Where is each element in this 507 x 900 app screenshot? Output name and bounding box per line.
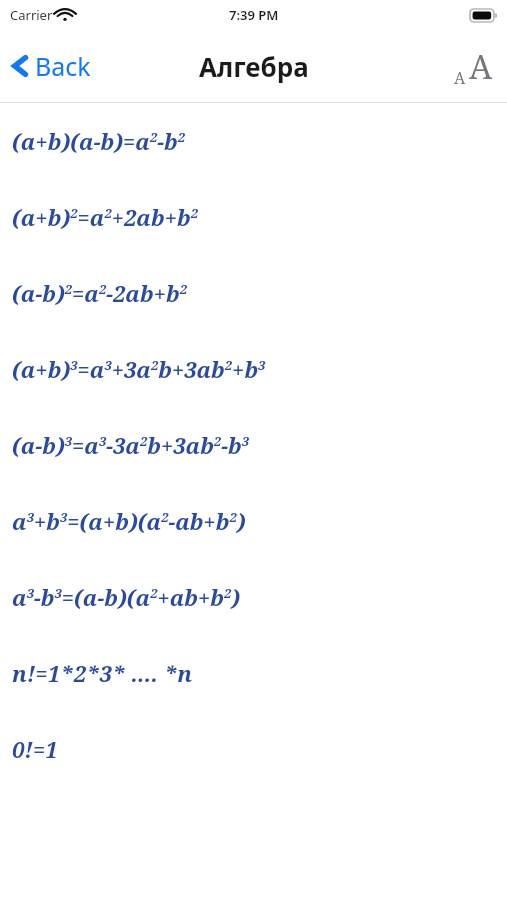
staticText: a3+b3=(a+b)(a2-ab+b2): [12, 506, 246, 536]
staticText: 0!=1: [12, 734, 58, 764]
button[interactable]: Change text size: [444, 36, 507, 97]
button[interactable]: (a+b)(a-b)=a2-b2: [0, 103, 507, 179]
button[interactable]: (a-b)2=a2-2ab+b2: [0, 255, 507, 331]
button[interactable]: (a+b)3=a3+3a2b+3ab2+b3: [0, 331, 507, 407]
staticText: 7:39 PM: [229, 6, 279, 24]
button[interactable]: 0!=1: [0, 711, 507, 787]
staticText: (a-b)3=a3-3a2b+3ab2-b3: [12, 430, 249, 460]
staticText: A: [469, 44, 493, 89]
button[interactable]: a3+b3=(a+b)(a2-ab+b2): [0, 483, 507, 559]
staticText: Back: [35, 49, 91, 83]
staticText: (a-b)2=a2-2ab+b2: [12, 278, 187, 308]
staticText: a3-b3=(a-b)(a2+ab+b2): [12, 582, 241, 612]
staticText: Carrier: [10, 6, 53, 24]
staticText: A: [454, 67, 466, 89]
staticText: (a+b)3=a3+3a2b+3ab2+b3: [12, 354, 266, 384]
button[interactable]: (a+b)2=a2+2ab+b2: [0, 179, 507, 255]
button[interactable]: a3-b3=(a-b)(a2+ab+b2): [0, 559, 507, 635]
button[interactable]: (a-b)3=a3-3a2b+3ab2-b3: [0, 407, 507, 483]
button[interactable]: n!=1*2*3* .... *n: [0, 635, 507, 711]
staticText: (a+b)(a-b)=a2-b2: [12, 126, 185, 156]
staticText: (a+b)2=a2+2ab+b2: [12, 202, 198, 232]
staticText: Алгебра: [199, 49, 309, 84]
staticText: n!=1*2*3* .... *n: [12, 658, 193, 688]
button[interactable]: Back: [0, 41, 105, 91]
